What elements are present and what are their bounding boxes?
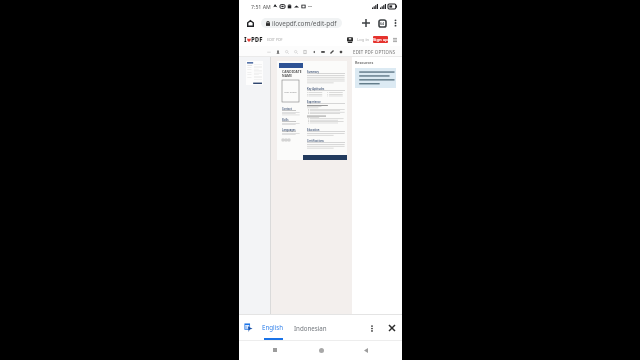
button[interactable]: Draw	[327, 47, 336, 56]
staticText: Summary	[307, 70, 319, 73]
staticText: CANDIDATE	[282, 70, 302, 74]
staticText: Contact	[282, 107, 292, 110]
staticText: ilovepdf.com/edit-pdf	[272, 19, 337, 28]
button[interactable]: ilovepdf.com/edit-pdf	[261, 18, 342, 28]
staticText: Experience	[307, 100, 321, 103]
button[interactable]: EDIT PDF OPTIONS	[353, 49, 396, 55]
staticText: Skills	[282, 118, 289, 121]
button[interactable]: Menu	[391, 36, 399, 44]
button[interactable]: Zoom in	[291, 47, 300, 56]
staticText: Certifications	[307, 139, 324, 142]
button[interactable]: Page	[300, 47, 309, 56]
staticText: Key Aptitudes	[307, 87, 325, 90]
button[interactable]: Indonesian	[294, 315, 327, 340]
button[interactable]: Google Translate	[243, 322, 254, 333]
staticText: Indonesian	[294, 324, 327, 332]
staticText: English	[262, 323, 284, 331]
staticText: PDF	[251, 36, 263, 44]
button[interactable]: Recents	[265, 340, 285, 360]
button[interactable]: Back	[356, 340, 376, 360]
button[interactable]: Image	[318, 47, 327, 56]
button[interactable]: More options	[389, 15, 401, 31]
button[interactable]: Close	[386, 318, 398, 338]
button[interactable]: More options	[365, 318, 379, 338]
button[interactable]: Home	[311, 340, 331, 360]
staticText: Languages	[282, 128, 296, 131]
button[interactable]: Text	[273, 47, 282, 56]
button[interactable]: I	[244, 36, 263, 44]
button[interactable]: Rotate	[309, 47, 318, 56]
staticText: EDIT PDF	[267, 37, 283, 42]
staticText: 64	[380, 21, 385, 26]
button[interactable]: Sign up	[373, 36, 388, 43]
staticText: I	[244, 36, 247, 44]
button[interactable]: Log in	[357, 37, 370, 43]
staticText: NAME	[282, 74, 293, 78]
staticText: EDIT PDF OPTIONS	[353, 49, 396, 55]
staticText: 7:51 AM	[251, 3, 271, 10]
button[interactable]: New tab	[359, 15, 373, 31]
staticText: Resources	[355, 60, 374, 65]
button[interactable]: Shape	[336, 47, 345, 56]
button[interactable]: Home	[239, 13, 261, 33]
staticText: Your Photo	[284, 90, 297, 93]
button[interactable]: Settings	[355, 47, 364, 56]
button[interactable]: Download	[345, 35, 354, 45]
button[interactable]: English	[262, 315, 284, 340]
button[interactable]: Zoom out	[282, 47, 291, 56]
staticText: Education	[307, 128, 320, 131]
button[interactable]: Undo	[264, 47, 273, 56]
staticText: Sign up	[373, 37, 388, 43]
button[interactable]: Tabs	[375, 15, 389, 31]
